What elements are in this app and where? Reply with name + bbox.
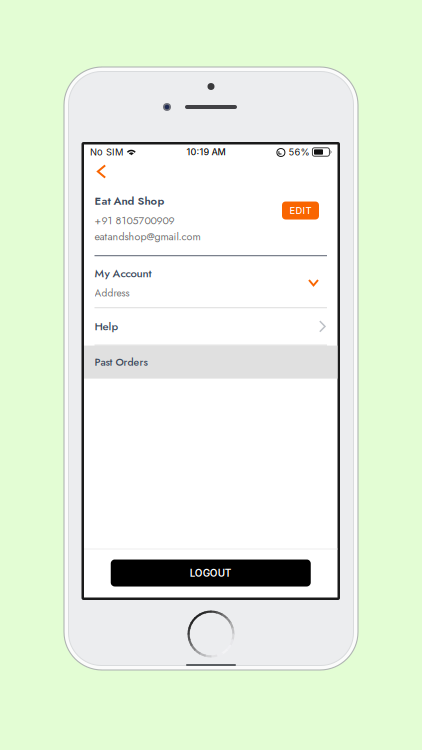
button[interactable]: Back xyxy=(89,159,114,183)
button[interactable]: EDIT xyxy=(282,201,319,219)
staticText: My Account xyxy=(94,265,151,282)
staticText: Past Orders xyxy=(94,355,147,370)
staticText: 56% xyxy=(288,146,309,158)
staticText: No SIM xyxy=(90,146,123,158)
staticText: Help xyxy=(94,318,118,335)
staticText: Eat And Shop xyxy=(94,192,164,209)
staticText: Address xyxy=(94,286,129,300)
button[interactable]: Past Orders xyxy=(84,346,337,379)
staticText: EDIT xyxy=(289,205,311,216)
button[interactable]: LOGOUT xyxy=(111,559,311,586)
button[interactable]: Help xyxy=(94,308,327,345)
staticText: +91 8105700909 xyxy=(94,213,174,228)
staticText: eatandshop@gmail.com xyxy=(94,229,200,244)
staticText: LOGOUT xyxy=(190,567,232,579)
button[interactable]: My Account xyxy=(94,256,327,307)
staticText: 10:19 AM xyxy=(186,146,225,157)
